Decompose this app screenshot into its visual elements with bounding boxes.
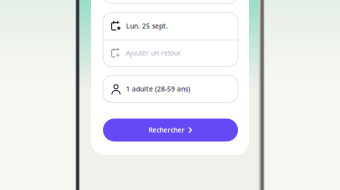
- staticText: Lun. 25 sept.: [126, 22, 168, 30]
- button[interactable]: Ajouter un retour: [103, 39, 238, 66]
- button[interactable]: Paris → Lyon: [103, 0, 238, 3]
- staticText: Ajouter un retour: [126, 49, 181, 57]
- button[interactable]: 1 adulte (28-59 ans): [103, 75, 238, 102]
- staticText: 1 adulte (28-59 ans): [126, 85, 190, 93]
- button[interactable]: Lun. 25 sept.: [103, 12, 238, 39]
- staticText: Rechercher: [148, 126, 184, 134]
- button[interactable]: Rechercher: [103, 118, 238, 141]
